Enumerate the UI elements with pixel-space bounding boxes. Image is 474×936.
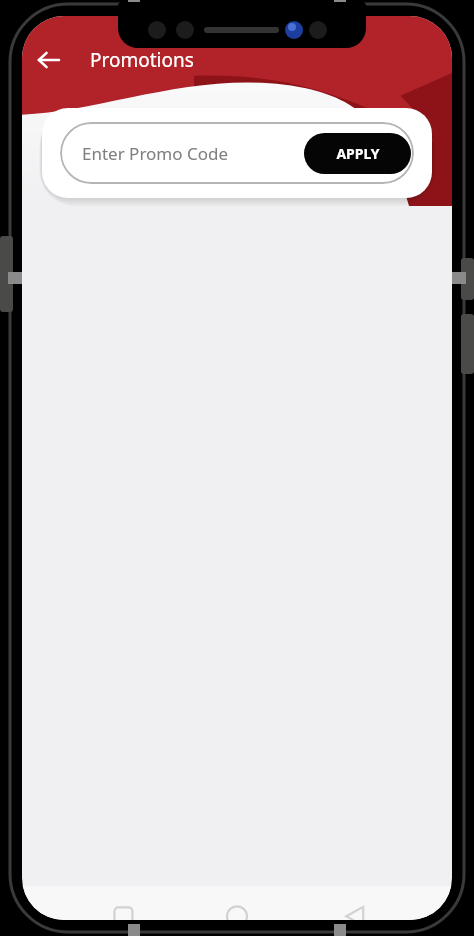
- button[interactable]: Back: [28, 42, 70, 78]
- button[interactable]: Enter Promo Code: [60, 122, 414, 184]
- staticText: Promotions: [90, 47, 194, 73]
- staticText: APPLY: [336, 144, 380, 163]
- button[interactable]: APPLY: [304, 133, 411, 174]
- staticText: Enter Promo Code: [82, 142, 229, 165]
